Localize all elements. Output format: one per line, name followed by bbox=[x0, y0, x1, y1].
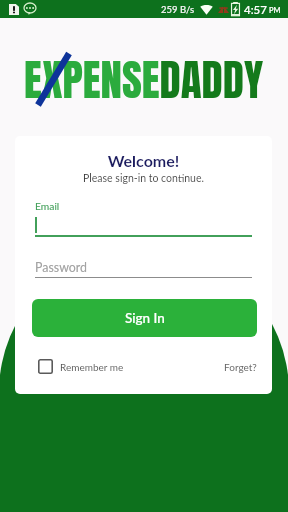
staticText: Email bbox=[35, 200, 60, 212]
staticText: EXPENSEDADDY bbox=[24, 47, 264, 112]
staticText: 4:57 bbox=[244, 3, 267, 17]
staticText: Remember me bbox=[60, 361, 124, 373]
staticText: Password bbox=[35, 260, 88, 275]
staticText: PM bbox=[269, 6, 281, 15]
staticText: Please sign-in to continue. bbox=[15, 172, 272, 185]
staticText: 259 B/s bbox=[161, 4, 195, 15]
button[interactable]: Sign In bbox=[32, 299, 257, 337]
staticText: Welcome! bbox=[15, 151, 272, 170]
staticText: Sign In bbox=[125, 310, 165, 326]
button[interactable]: Forget? bbox=[224, 361, 257, 373]
button[interactable]: Remember me bbox=[32, 359, 124, 374]
